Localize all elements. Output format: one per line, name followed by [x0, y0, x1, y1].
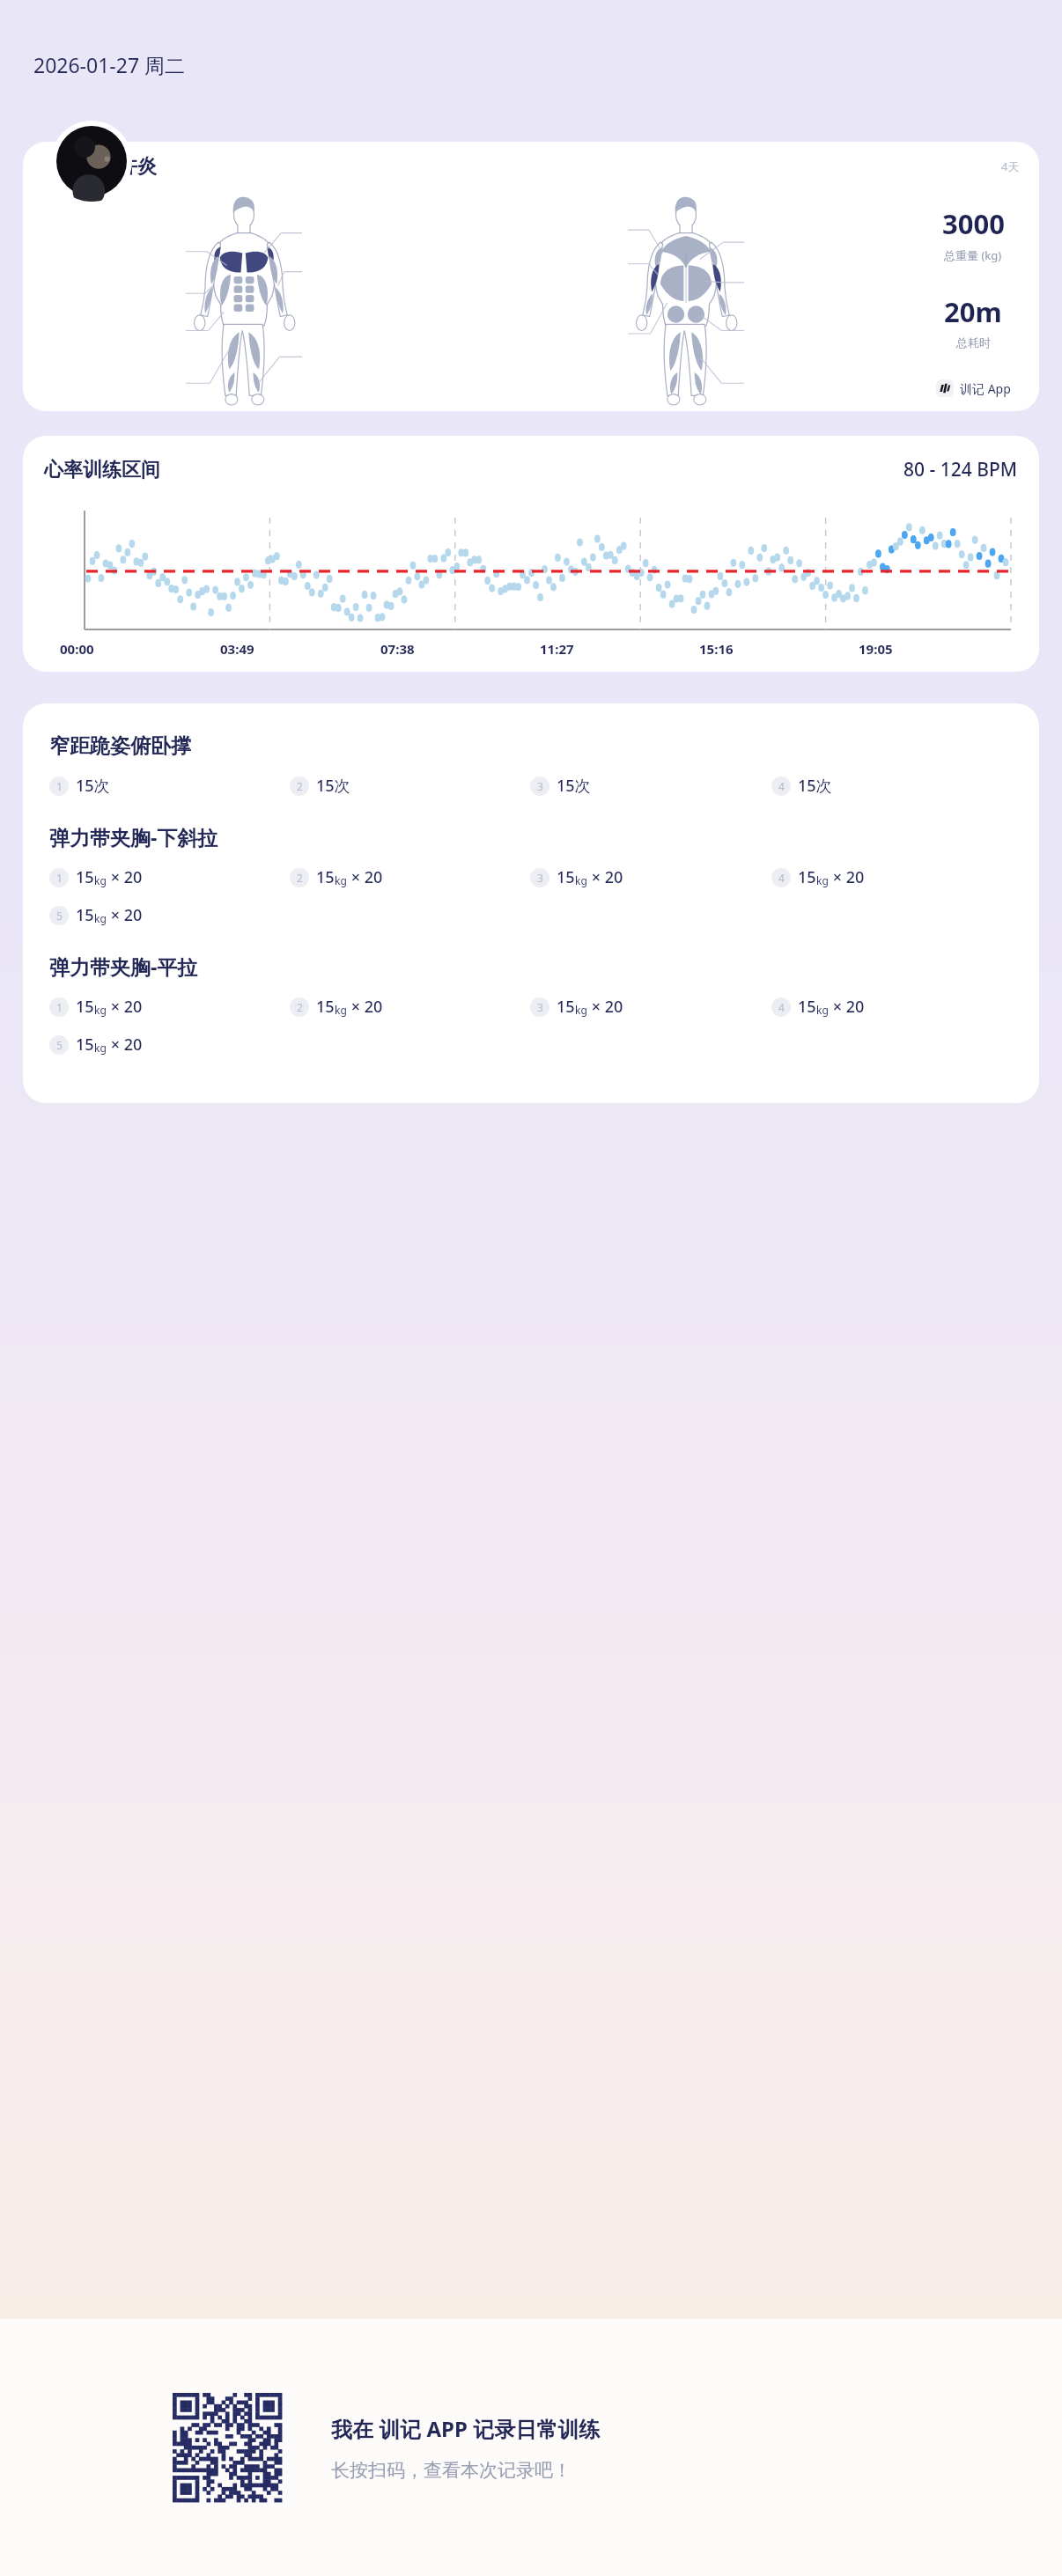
staticText: 5	[56, 909, 63, 923]
staticText: 2026-01-27 周二	[33, 51, 186, 78]
staticText: × 20	[347, 866, 383, 888]
staticText: 3	[537, 779, 543, 793]
button[interactable]: 1	[49, 775, 110, 797]
staticText: 80 - 124 BPM	[903, 457, 1018, 482]
staticText: kg	[94, 1003, 107, 1017]
staticText: 15	[76, 866, 94, 888]
staticText: 15	[557, 996, 575, 1018]
staticText: kg	[94, 1041, 107, 1055]
button[interactable]: 心率训练区间	[23, 436, 1039, 672]
staticText: 3	[537, 871, 543, 885]
button[interactable]: 3	[530, 775, 591, 797]
staticText: kg	[816, 1003, 829, 1017]
staticText: 4	[778, 871, 785, 885]
staticText: 1	[56, 871, 63, 885]
staticText: 1	[56, 779, 63, 793]
button[interactable]: 4	[771, 866, 865, 888]
staticText: 2	[297, 871, 303, 885]
staticText: 4	[778, 1000, 785, 1014]
staticText: 11:27	[540, 640, 574, 658]
staticText: 4天	[1001, 158, 1020, 174]
staticText: kg	[816, 873, 829, 887]
staticText: 19:05	[859, 640, 893, 658]
staticText: 2	[297, 779, 303, 793]
staticText: kg	[335, 1003, 347, 1017]
staticText: kg	[94, 911, 107, 925]
staticText: 03:49	[220, 640, 254, 658]
staticText: 长按扫码，查看本次记录吧！	[331, 2459, 572, 2482]
staticText: kg	[94, 873, 107, 887]
staticText: 15	[798, 996, 816, 1018]
staticText: 3	[537, 1000, 543, 1014]
staticText: 15次	[76, 775, 110, 797]
other: QR code	[173, 2393, 282, 2502]
staticText: × 20	[347, 996, 383, 1018]
staticText: kg	[575, 873, 587, 887]
button[interactable]: 2	[290, 775, 350, 797]
staticText: 弹力带夹胸-下斜拉	[49, 823, 218, 850]
staticText: 总重量 (kg)	[944, 247, 1002, 263]
button[interactable]: 3	[530, 866, 623, 888]
staticText: 2	[297, 1000, 303, 1014]
staticText: × 20	[107, 1034, 143, 1056]
staticText: 20m	[944, 293, 1002, 330]
staticText: kg	[335, 873, 347, 887]
staticText: 许炎	[118, 154, 157, 179]
staticText: 3000	[942, 205, 1005, 242]
button[interactable]: 3	[530, 996, 623, 1018]
staticText: 窄距跪姿俯卧撑	[49, 733, 191, 759]
staticText: kg	[575, 1003, 587, 1017]
staticText: 15	[76, 904, 94, 926]
staticText: × 20	[829, 996, 865, 1018]
staticText: 15	[316, 996, 335, 1018]
staticText: 15	[76, 996, 94, 1018]
staticText: 5	[56, 1038, 63, 1052]
staticText: × 20	[107, 866, 143, 888]
staticText: 训记 App	[960, 380, 1011, 397]
button[interactable]: 5	[49, 1034, 143, 1056]
staticText: 我在 训记 APP 记录日常训练	[331, 2414, 601, 2443]
button[interactable]: 许炎	[23, 142, 1039, 411]
staticText: 15	[798, 866, 816, 888]
staticText: 07:38	[380, 640, 415, 658]
button[interactable]: 2	[290, 866, 383, 888]
staticText: × 20	[107, 904, 143, 926]
staticText: 15次	[316, 775, 350, 797]
staticText: 15次	[798, 775, 832, 797]
button[interactable]: Profile photo	[51, 121, 132, 202]
staticText: 15次	[557, 775, 591, 797]
staticText: 弹力带夹胸-平拉	[49, 953, 198, 980]
button[interactable]: 5	[49, 904, 143, 926]
staticText: × 20	[829, 866, 865, 888]
staticText: 15	[76, 1034, 94, 1056]
staticText: 15:16	[699, 640, 734, 658]
staticText: 4	[778, 779, 785, 793]
button[interactable]: 4	[771, 996, 865, 1018]
button[interactable]: 2	[290, 996, 383, 1018]
button[interactable]: 4	[771, 775, 832, 797]
staticText: × 20	[107, 996, 143, 1018]
staticText: × 20	[587, 996, 623, 1018]
button[interactable]: 1	[49, 996, 143, 1018]
staticText: 心率训练区间	[44, 458, 160, 482]
staticText: 15	[557, 866, 575, 888]
staticText: 00:00	[60, 640, 94, 658]
staticText: 总耗时	[956, 335, 991, 350]
button[interactable]: 1	[49, 866, 143, 888]
button[interactable]: 窄距跪姿俯卧撑	[23, 703, 1039, 1103]
staticText: × 20	[587, 866, 623, 888]
staticText: 15	[316, 866, 335, 888]
staticText: 1	[56, 1000, 63, 1014]
